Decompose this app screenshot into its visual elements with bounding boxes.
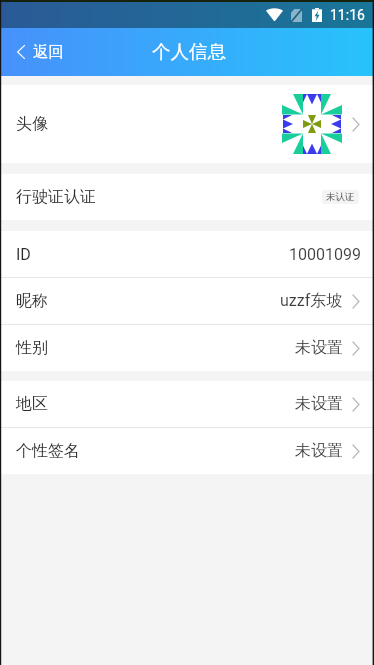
staticText: 11:16 — [330, 7, 365, 23]
staticText: 行驶证认证 — [16, 187, 96, 207]
button[interactable]: 行驶证认证 — [0, 174, 374, 220]
staticText: 未认证 — [326, 191, 355, 203]
staticText: 性别 — [16, 338, 48, 358]
button[interactable]: 个性签名 — [0, 428, 374, 474]
button[interactable]: 昵称 — [0, 278, 374, 324]
button[interactable]: ID — [0, 231, 374, 277]
button[interactable]: 性别 — [0, 325, 374, 371]
staticText: 未设置 — [295, 441, 343, 461]
button[interactable]: 返回 — [0, 34, 78, 70]
button[interactable]: 头像 — [0, 85, 374, 163]
staticText: 未设置 — [295, 338, 343, 358]
staticText: 返回 — [33, 42, 64, 62]
staticText: ID — [16, 245, 31, 264]
staticText: 个人信息 — [152, 40, 226, 63]
staticText: 头像 — [16, 114, 48, 134]
staticText: 10001099 — [289, 245, 361, 264]
staticText: 未设置 — [295, 394, 343, 414]
button[interactable]: 地区 — [0, 381, 374, 427]
staticText: 地区 — [16, 394, 48, 414]
staticText: uzzf东坡 — [280, 291, 343, 311]
staticText: 昵称 — [16, 291, 48, 311]
staticText: 个性签名 — [16, 441, 80, 461]
